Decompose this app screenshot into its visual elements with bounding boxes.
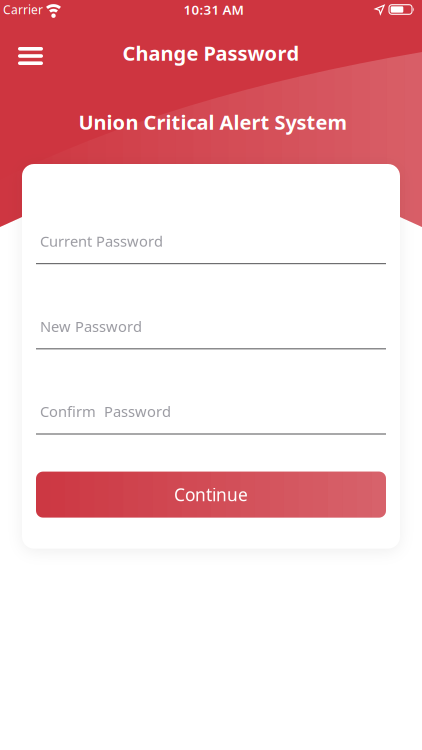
staticText: Current Password — [40, 231, 163, 251]
staticText: Union Critical Alert System — [78, 109, 347, 135]
staticText: New Password — [40, 316, 142, 336]
staticText: Continue — [174, 483, 248, 506]
staticText: Change Password — [122, 40, 299, 66]
button[interactable]: Current Password — [36, 164, 386, 264]
button[interactable]: Continue — [36, 472, 386, 518]
button[interactable]: Confirm Password — [36, 349, 386, 435]
staticText: 10:31 AM — [183, 1, 243, 18]
staticText: Confirm Password — [40, 402, 171, 421]
staticText: Carrier — [3, 1, 43, 17]
button[interactable]: Menu — [12, 41, 49, 71]
button[interactable]: New Password — [36, 264, 386, 349]
